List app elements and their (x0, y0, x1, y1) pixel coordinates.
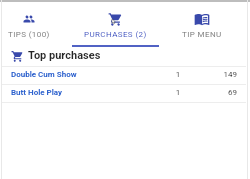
staticText: Double Cum Show (11, 70, 77, 79)
staticText: 149 (197, 70, 237, 79)
staticText: TIP MENU (182, 30, 222, 39)
staticText: 1 (160, 70, 196, 79)
button[interactable]: Tips tab (0, 0, 72, 47)
button[interactable]: Top purchases (0, 47, 250, 66)
button[interactable]: Butt Hole Play (0, 85, 250, 102)
staticText: Top purchases (28, 49, 101, 62)
button[interactable]: Tip menu tab (158, 0, 245, 47)
staticText: Butt Hole Play (11, 88, 63, 97)
staticText: 1 (160, 88, 196, 97)
staticText: PURCHASES (2) (84, 30, 147, 39)
button[interactable]: Purchases tab (72, 0, 159, 47)
staticText: TIPS (100) (8, 30, 50, 39)
button[interactable]: Double Cum Show (0, 67, 250, 84)
staticText: 69 (197, 88, 237, 97)
